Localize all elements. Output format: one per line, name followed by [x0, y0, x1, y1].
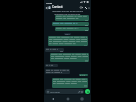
button[interactable]: [79, 74, 88, 76]
button[interactable]: Message: [45, 89, 84, 94]
staticText: 10:30: [46, 1, 53, 4]
button[interactable]: [48, 36, 88, 46]
button[interactable]: [52, 78, 88, 88]
staticText: Messages and calls are end-to-end encryp…: [48, 10, 87, 15]
button[interactable]: Home: [63, 95, 73, 102]
button[interactable]: [45, 69, 70, 74]
button[interactable]: [45, 64, 58, 67]
button[interactable]: Recent apps: [77, 95, 87, 102]
button[interactable]: [50, 53, 89, 62]
staticText: Message: [50, 90, 60, 93]
button[interactable]: [45, 48, 64, 52]
button[interactable]: Back: [45, 6, 48, 9]
button[interactable]: Video call: [80, 6, 83, 9]
button[interactable]: [52, 22, 89, 26]
button[interactable]: More options: [87, 6, 90, 9]
button[interactable]: [55, 15, 89, 21]
button[interactable]: [55, 27, 89, 31]
button[interactable]: Voice call: [84, 6, 87, 9]
button[interactable]: Back: [48, 95, 58, 102]
button[interactable]: Record voice message: [85, 89, 90, 94]
staticText: TODAY: [65, 33, 71, 35]
staticText: Contact: [52, 5, 63, 9]
